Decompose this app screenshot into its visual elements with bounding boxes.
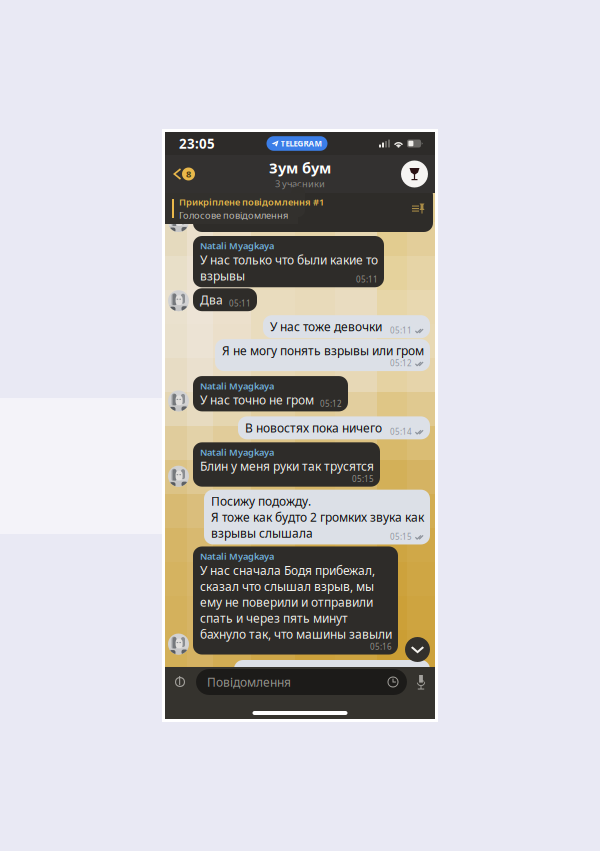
staticText: Зум бум [269,158,331,178]
button[interactable]: Pinned messages [412,203,425,214]
staticText: 23:05 [179,135,215,152]
staticText: 05:12 [390,358,412,368]
staticText: 05:14 [390,426,412,437]
button[interactable]: Attach file [173,674,187,690]
staticText: 3 учасники [275,177,325,190]
staticText: В новостях пока ничего [245,420,382,436]
staticText: 05:11 [356,274,378,285]
staticText: Natali Myagkaya [200,446,274,458]
staticText: У нас сначала Бодя прибежал, [200,562,375,578]
staticText: спать и через пять минут [200,610,348,626]
staticText: У нас только что были какие то [200,252,378,268]
staticText: 05:15 [390,531,412,542]
staticText: Natali Myagkaya [200,380,274,392]
staticText: 05:11 [229,298,251,309]
staticText: Я тоже как будто 2 громких звука как [211,509,424,525]
staticText: 05:16 [370,641,392,652]
button[interactable]: Chat info [401,160,428,187]
staticText: 05:12 [320,398,342,409]
staticText: бахнуло так, что машины завыли [200,626,392,642]
staticText: Посижу подожду. [211,493,311,509]
staticText: Голосове повідомлення [179,209,288,221]
staticText: Natali Myagkaya [200,550,274,562]
staticText: Я не могу понять взрывы или гром [222,343,424,358]
staticText: TELEGRAM [280,138,322,149]
staticText: взрывы [200,268,245,284]
staticText: Прикріплене повідомлення #1 [179,196,324,208]
staticText: 8 [186,168,191,180]
staticText: У нас тоже девочки [270,319,382,335]
staticText: Natali Myagkaya [200,239,274,252]
staticText: Два [200,292,223,308]
button[interactable]: Back [171,161,197,186]
staticText: взрывы слышала [211,525,313,541]
button[interactable]: Scroll to bottom [405,637,430,662]
staticText: ему не поверили и отправили [200,594,373,610]
staticText: 05:11 [390,325,412,336]
staticText: сказал что слышал взрыв, мы [200,578,374,594]
staticText: Повідомлення [207,674,291,690]
staticText: У нас точно не гром [200,392,314,408]
staticText: 05:15 [352,473,374,484]
staticText: Блин у меня руки так трусятся [200,458,374,474]
button[interactable]: Record voice message [416,674,426,689]
